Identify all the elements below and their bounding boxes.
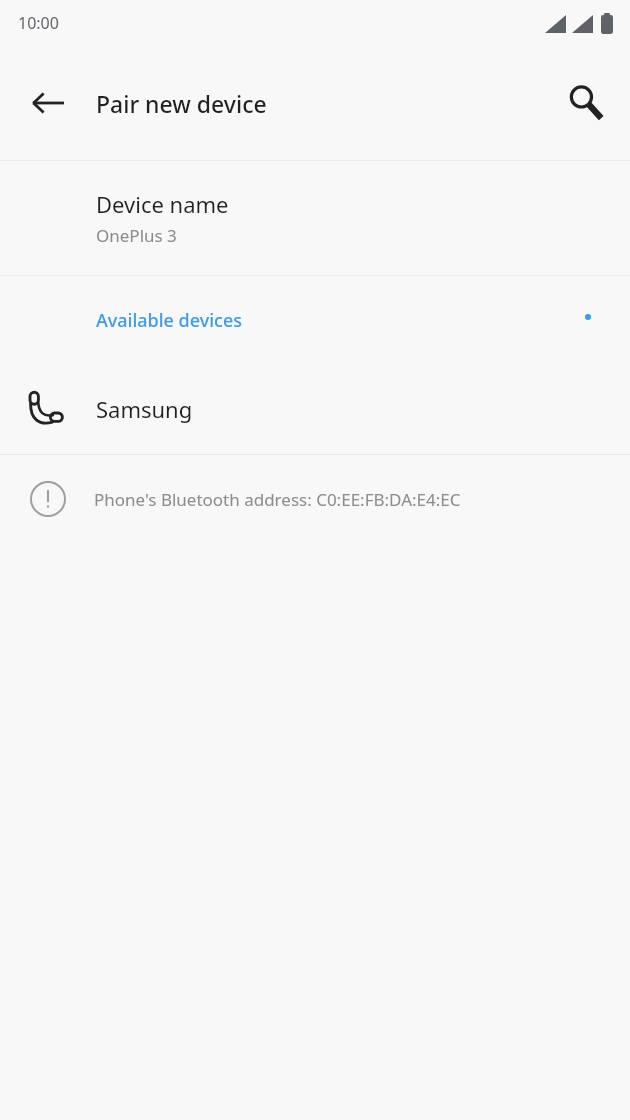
- staticText: Phone's Bluetooth address: C0:EE:FB:DA:E…: [94, 488, 461, 511]
- button[interactable]: Samsung: [0, 364, 630, 454]
- staticText: Available devices: [96, 308, 243, 333]
- button[interactable]: Device name: [0, 161, 630, 275]
- button[interactable]: Back: [16, 71, 80, 135]
- staticText: OnePlus 3: [96, 224, 177, 247]
- staticText: 10:00: [18, 12, 59, 34]
- button[interactable]: Search: [556, 73, 616, 133]
- staticText: Pair new device: [96, 88, 267, 119]
- staticText: Samsung: [96, 394, 193, 424]
- staticText: Device name: [96, 189, 229, 219]
